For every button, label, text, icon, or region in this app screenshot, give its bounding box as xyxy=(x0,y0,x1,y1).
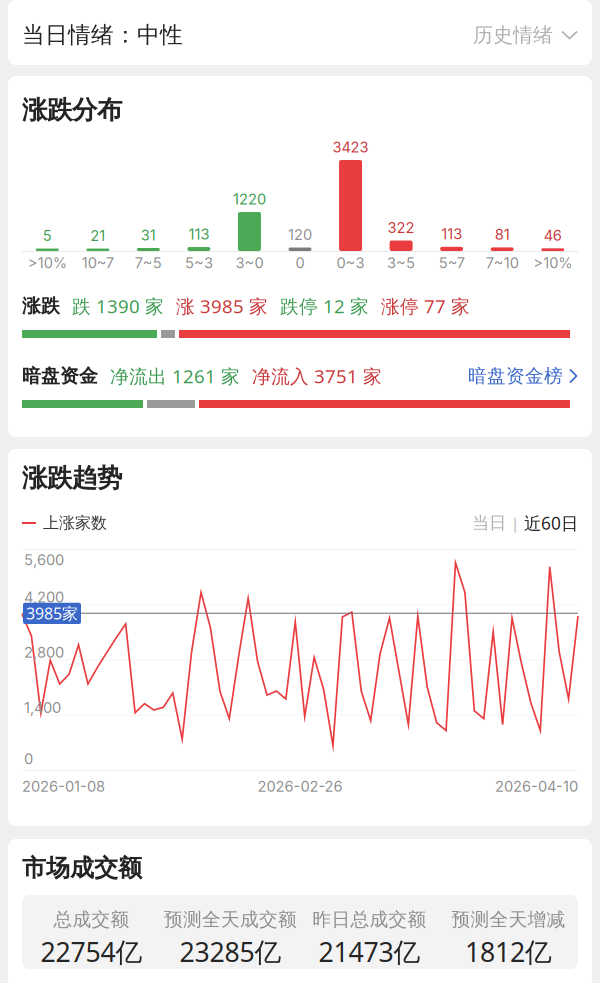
staticText: 10~7 xyxy=(82,254,114,272)
staticText: 1812亿 xyxy=(465,934,552,969)
staticText: 21473亿 xyxy=(318,934,420,969)
staticText: 跌停 12 家 xyxy=(280,294,369,318)
staticText: 跌 1390 家 xyxy=(72,294,164,318)
staticText: 涨跌 xyxy=(22,294,60,317)
staticText: 3985家 xyxy=(26,603,78,624)
staticText: 2026-02-26 xyxy=(257,778,342,795)
staticText: 23285亿 xyxy=(179,934,281,969)
staticText: 81 xyxy=(495,226,510,243)
button[interactable]: 近60日 xyxy=(524,511,578,534)
staticText: 净流入 3751 家 xyxy=(252,364,382,388)
staticText: | xyxy=(511,513,519,533)
staticText: 3~5 xyxy=(387,254,415,272)
staticText: 暗盘资金 xyxy=(22,364,98,387)
staticText: 5,600 xyxy=(24,551,64,569)
staticText: 5 xyxy=(43,227,52,244)
staticText: 21 xyxy=(90,227,105,244)
staticText: 上涨家数 xyxy=(43,513,107,533)
staticText: 22754亿 xyxy=(40,934,142,969)
staticText: 涨 3985 家 xyxy=(176,294,268,318)
staticText: 暗盘资金榜 xyxy=(468,364,563,387)
staticText: 昨日总成交额 xyxy=(312,908,426,931)
staticText: 113 xyxy=(441,225,462,243)
staticText: 2026-04-10 xyxy=(495,778,578,795)
staticText: 4,200 xyxy=(24,588,64,606)
staticText: 0~3 xyxy=(336,254,364,272)
staticText: 1220 xyxy=(233,190,266,208)
staticText: 1,400 xyxy=(24,699,61,716)
staticText: 预测全天增减 xyxy=(451,908,565,931)
staticText: 当日情绪：中性 xyxy=(22,21,183,49)
staticText: 涨跌趋势 xyxy=(22,462,122,493)
staticText: 总成交额 xyxy=(53,908,129,931)
staticText: 46 xyxy=(544,227,562,244)
staticText: 5~7 xyxy=(439,254,465,272)
button[interactable]: 当日情绪：中性 xyxy=(8,0,592,65)
staticText: 涨停 77 家 xyxy=(381,294,470,318)
staticText: 7~10 xyxy=(486,254,519,272)
staticText: 2026-01-08 xyxy=(22,778,105,795)
staticText: 预测全天成交额 xyxy=(164,908,297,931)
button[interactable]: 当日 xyxy=(472,512,506,534)
staticText: >10% xyxy=(533,254,572,272)
staticText: 31 xyxy=(141,226,156,244)
staticText: 3~0 xyxy=(235,254,263,272)
staticText: 3423 xyxy=(332,138,368,156)
staticText: 2,800 xyxy=(24,643,64,661)
button[interactable]: 暗盘资金 xyxy=(8,338,578,387)
staticText: 当日 xyxy=(472,512,506,534)
staticText: 113 xyxy=(188,225,209,243)
staticText: >10% xyxy=(28,254,67,272)
staticText: 涨跌分布 xyxy=(22,94,122,125)
staticText: 322 xyxy=(388,219,415,236)
staticText: 市场成交额 xyxy=(22,853,142,883)
staticText: 7~5 xyxy=(135,254,162,272)
staticText: 0 xyxy=(295,254,304,272)
staticText: 5~3 xyxy=(185,254,213,272)
staticText: 0 xyxy=(24,750,33,768)
staticText: 净流出 1261 家 xyxy=(110,364,240,388)
staticText: 近60日 xyxy=(524,511,578,534)
staticText: 历史情绪 xyxy=(473,23,553,47)
staticText: 120 xyxy=(288,226,312,243)
